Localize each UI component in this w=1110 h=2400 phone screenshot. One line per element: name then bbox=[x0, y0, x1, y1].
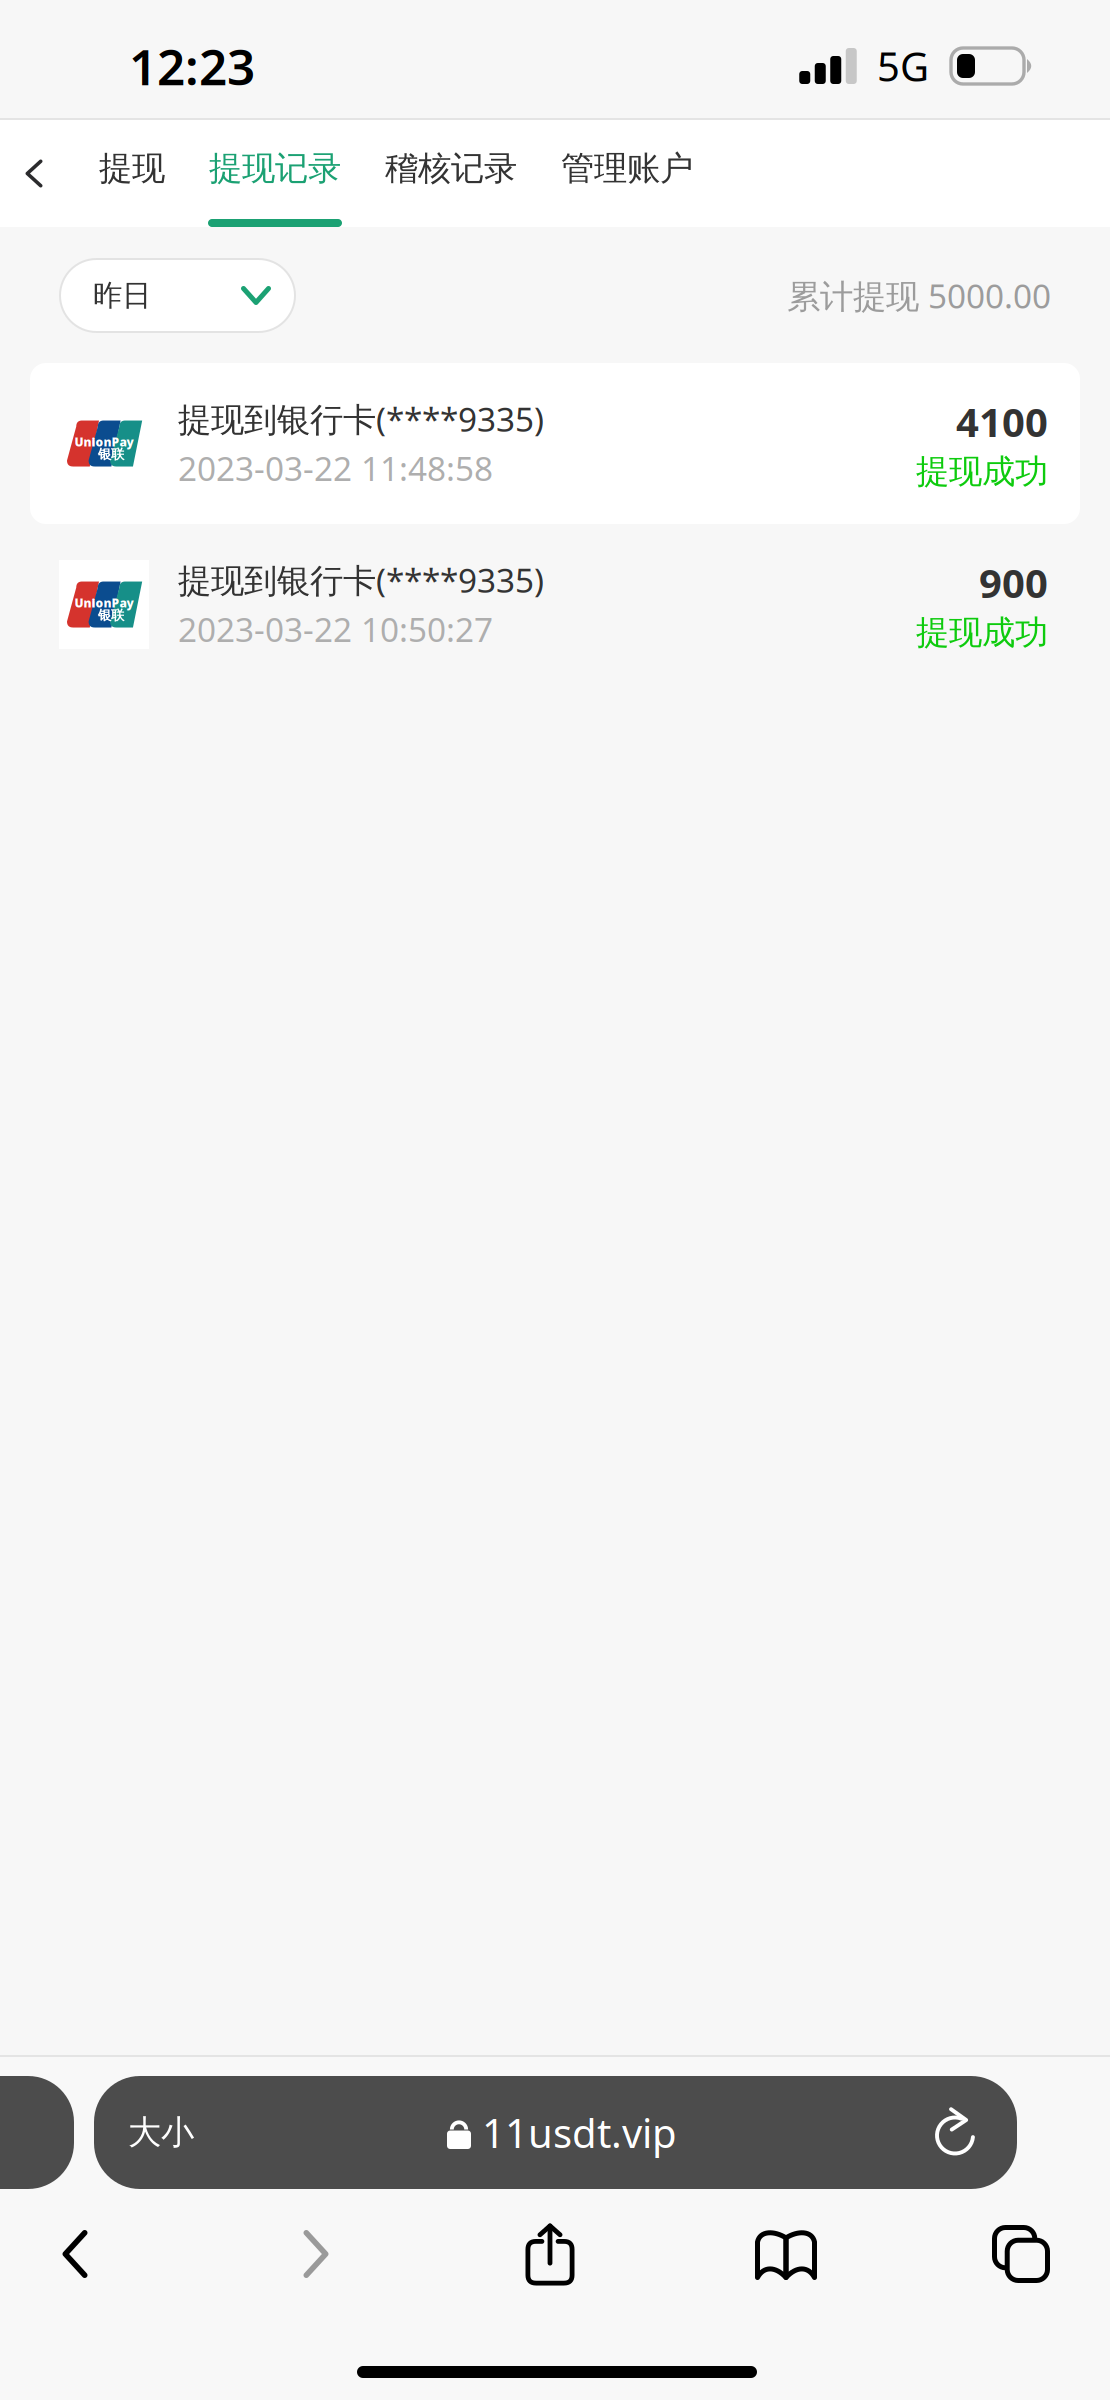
button[interactable]: Back bbox=[0, 120, 68, 227]
button[interactable]: 11usdt.vip bbox=[94, 2076, 1017, 2189]
staticText: 提现到银行卡(****9335) bbox=[178, 558, 544, 602]
button[interactable]: 提现记录 bbox=[187, 115, 363, 232]
staticText: 4100 bbox=[956, 395, 1048, 448]
staticText: UnionPay bbox=[74, 434, 133, 450]
button[interactable]: Forward bbox=[256, 2198, 376, 2310]
staticText: 稽核记录 bbox=[385, 148, 517, 189]
staticText: 提现成功 bbox=[916, 612, 1048, 653]
staticText: 提现到银行卡(****9335) bbox=[178, 397, 544, 441]
button[interactable]: Back bbox=[15, 2198, 135, 2310]
staticText: 大小 bbox=[128, 2112, 194, 2153]
staticText: 900 bbox=[979, 556, 1048, 609]
staticText: 提现成功 bbox=[916, 451, 1048, 492]
staticText: 提现 bbox=[99, 148, 165, 189]
button[interactable]: Reload bbox=[94, 2076, 1005, 2189]
button[interactable]: Bookmarks bbox=[726, 2198, 846, 2310]
staticText: 提现记录 bbox=[209, 148, 341, 189]
staticText: 2023-03-22 10:50:27 bbox=[178, 607, 493, 651]
button[interactable]: Share bbox=[490, 2198, 610, 2310]
staticText: 银联 bbox=[98, 607, 124, 623]
staticText: UnionPay bbox=[74, 595, 133, 611]
staticText: 5G bbox=[877, 39, 929, 92]
button[interactable]: Tabs bbox=[961, 2198, 1081, 2310]
staticText: 管理账户 bbox=[561, 148, 693, 189]
staticText: 累计提现 5000.00 bbox=[787, 273, 1051, 318]
staticText: 11usdt.vip bbox=[482, 2106, 677, 2159]
button[interactable]: 大小 bbox=[94, 2076, 238, 2189]
button[interactable]: 提现 bbox=[68, 115, 187, 232]
button[interactable]: 稽核记录 bbox=[363, 115, 539, 232]
staticText: 昨日 bbox=[93, 277, 151, 313]
staticText: 银联 bbox=[98, 446, 124, 462]
button[interactable]: 昨日 bbox=[60, 259, 295, 332]
staticText: 12:23 bbox=[129, 33, 255, 99]
button[interactable]: 管理账户 bbox=[539, 115, 715, 232]
staticText: 2023-03-22 11:48:58 bbox=[178, 446, 493, 490]
